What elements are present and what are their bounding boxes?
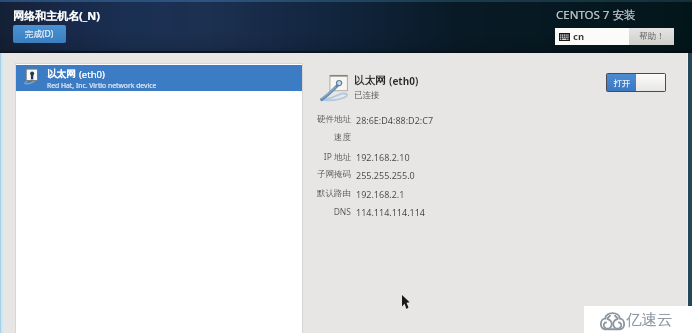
staticText: 网络和主机名(_N): [13, 8, 100, 23]
staticText: CENTOS 7 安装: [556, 7, 636, 23]
staticText: (eth0): [389, 74, 419, 88]
button[interactable]: 打开 以太网: [606, 73, 666, 92]
staticText: IP 地址: [289, 151, 351, 163]
staticText: 子网掩码: [289, 169, 351, 180]
button[interactable]: 键盘布局 cn: [555, 28, 629, 45]
staticText: 114.114.114.114: [356, 206, 426, 218]
staticText: cn: [573, 30, 585, 43]
staticText: 以太网: [47, 68, 76, 80]
staticText: DNS: [289, 206, 351, 218]
staticText: 192.168.2.10: [356, 151, 410, 163]
staticText: 硬件地址: [289, 114, 351, 125]
button[interactable]: 完成(D): [13, 25, 66, 43]
button[interactable]: 帮助！: [629, 28, 674, 45]
staticText: 255.255.255.0: [356, 169, 415, 181]
button[interactable]: 以太网: [16, 65, 302, 91]
staticText: 28:6E:D4:88:D2:C7: [356, 114, 434, 126]
staticText: 打开: [614, 78, 630, 88]
staticText: 以太网: [354, 74, 386, 87]
staticText: 亿速云: [626, 310, 673, 330]
staticText: 192.168.2.1: [356, 188, 405, 200]
staticText: 默认路由: [289, 188, 351, 199]
staticText: Red Hat, Inc. Virtio network device: [47, 81, 157, 90]
staticText: (eth0): [79, 68, 105, 81]
staticText: 速度: [289, 132, 351, 143]
staticText: 帮助！: [639, 31, 665, 42]
staticText: 完成(D): [25, 28, 54, 40]
staticText: 已连接: [354, 90, 380, 101]
